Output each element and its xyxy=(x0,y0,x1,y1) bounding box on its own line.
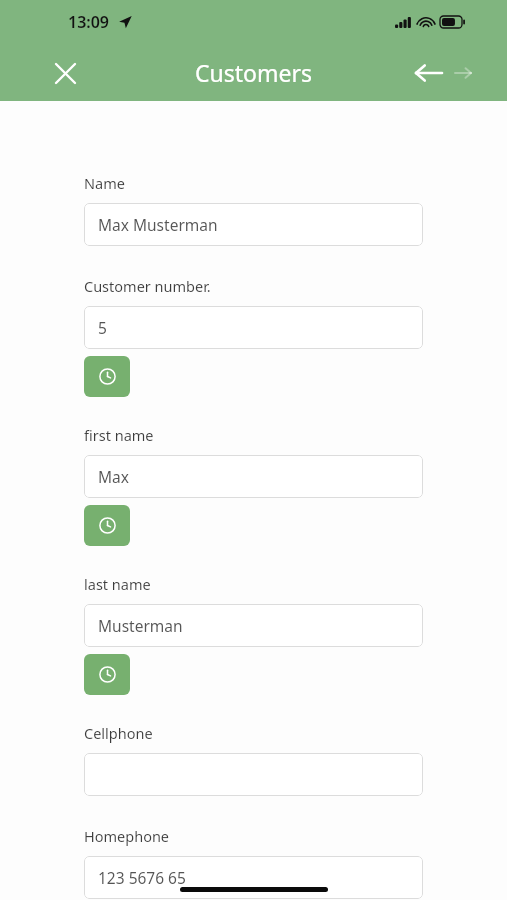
staticText: Customers xyxy=(195,57,312,88)
button[interactable]: Max xyxy=(84,455,423,498)
staticText: Cellphone xyxy=(84,723,153,743)
button[interactable] xyxy=(84,753,423,796)
button[interactable]: 5 xyxy=(84,306,423,349)
staticText: Max xyxy=(98,466,129,487)
staticText: Max Musterman xyxy=(98,214,218,235)
staticText: first name xyxy=(84,425,154,445)
button[interactable]: History xyxy=(84,356,130,397)
button[interactable]: Forward xyxy=(449,59,477,87)
button[interactable]: History xyxy=(84,505,130,546)
staticText: 13:09 xyxy=(68,11,110,33)
staticText: Musterman xyxy=(98,615,183,636)
button[interactable]: Close xyxy=(48,56,82,90)
staticText: 5 xyxy=(98,317,107,338)
button[interactable]: History xyxy=(84,654,130,695)
staticText: last name xyxy=(84,574,151,594)
staticText: Customer number. xyxy=(84,276,211,296)
button[interactable]: Max Musterman xyxy=(84,203,423,246)
staticText: 123 5676 65 xyxy=(98,867,186,888)
button[interactable]: 123 5676 65 xyxy=(84,856,423,899)
staticText: Homephone xyxy=(84,826,170,846)
button[interactable]: Musterman xyxy=(84,604,423,647)
staticText: Name xyxy=(84,173,125,193)
button[interactable]: Back xyxy=(411,56,445,90)
